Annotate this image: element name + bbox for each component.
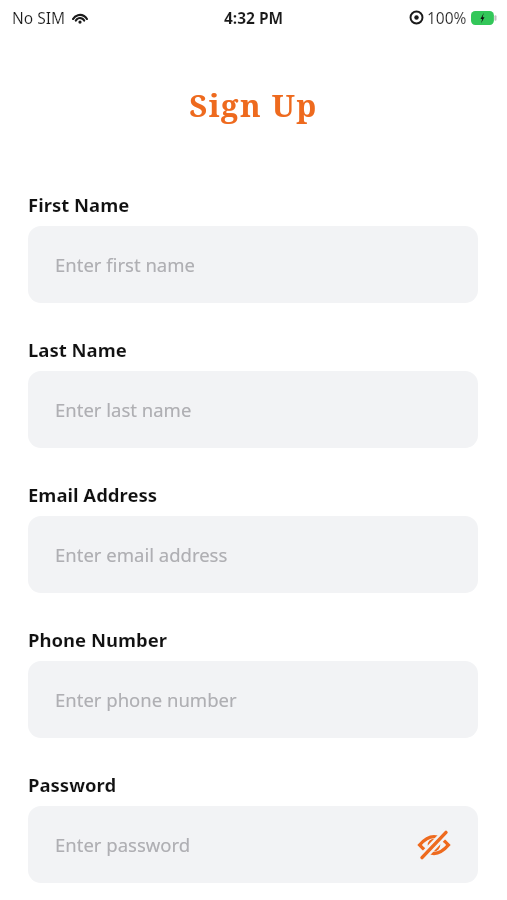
button[interactable]: Show password [417,828,451,862]
staticText: 100% [427,7,467,28]
staticText: First Name [28,192,130,217]
staticText: Last Name [28,337,127,362]
staticText: Password [28,772,117,797]
staticText: Enter first name [55,252,451,277]
button[interactable]: Enter last name [28,371,478,448]
button[interactable]: Enter email address [28,516,478,593]
staticText: Email Address [28,482,158,507]
staticText: Enter phone number [55,687,451,712]
staticText: Enter last name [55,397,451,422]
button[interactable]: Enter phone number [28,661,478,738]
button[interactable]: Enter first name [28,226,478,303]
staticText: 4:32 PM [224,7,284,28]
staticText: Enter password [55,832,417,857]
staticText: Phone Number [28,627,168,652]
staticText: No SIM [12,7,66,28]
button[interactable]: Enter password [28,806,478,883]
staticText: Sign Up [0,84,507,126]
staticText: Enter email address [55,542,451,567]
